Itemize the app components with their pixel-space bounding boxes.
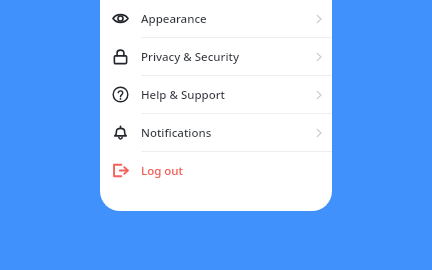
button[interactable]: Notifications bbox=[100, 114, 332, 151]
button[interactable]: Appearance bbox=[100, 0, 332, 37]
staticText: Help & Support bbox=[141, 87, 225, 103]
button[interactable]: Log out bbox=[100, 152, 332, 189]
staticText: Log out bbox=[141, 163, 183, 179]
staticText: Appearance bbox=[141, 11, 207, 27]
button[interactable]: Help & Support bbox=[100, 76, 332, 113]
button[interactable]: Privacy & Security bbox=[100, 38, 332, 75]
staticText: Privacy & Security bbox=[141, 49, 240, 65]
staticText: Notifications bbox=[141, 125, 212, 141]
